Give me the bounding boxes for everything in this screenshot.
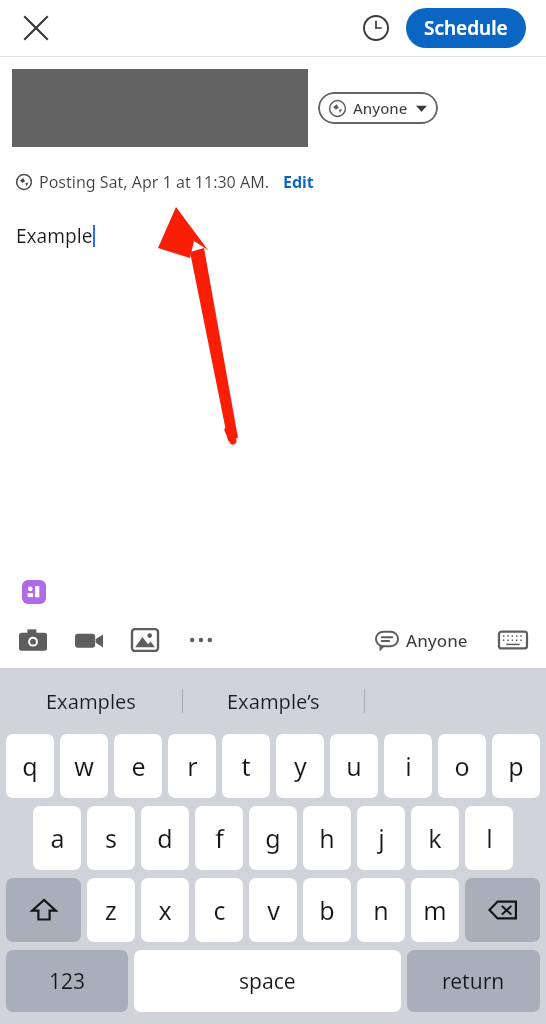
button[interactable]: n (357, 878, 405, 942)
button[interactable]: d (141, 806, 189, 870)
button[interactable]: p (492, 734, 540, 798)
staticText: d (157, 821, 173, 855)
staticText: Edit (283, 171, 314, 193)
button[interactable]: Example’s (183, 668, 364, 734)
staticText: v (267, 893, 280, 927)
staticText: Example’s (227, 688, 320, 715)
button[interactable]: Examples (0, 668, 182, 734)
staticText: o (454, 749, 470, 783)
staticText: x (158, 893, 172, 927)
staticText: r (187, 749, 198, 783)
staticText: q (22, 749, 38, 783)
button[interactable]: c (195, 878, 243, 942)
button[interactable]: Camera (14, 621, 52, 659)
button[interactable]: Shift (6, 878, 81, 942)
button[interactable]: t (222, 734, 270, 798)
button[interactable]: x (141, 878, 189, 942)
staticText: j (378, 821, 385, 855)
button[interactable]: k (411, 806, 459, 870)
button[interactable]: a (33, 806, 81, 870)
button[interactable]: Close (14, 6, 58, 50)
staticText: u (346, 749, 362, 783)
button[interactable]: Posting Sat, Apr 1 at 11:30 AM. (16, 171, 314, 193)
button[interactable]: space (134, 950, 401, 1012)
staticText: return (442, 967, 505, 996)
button[interactable]: Schedule time (356, 8, 396, 48)
button[interactable]: z (87, 878, 135, 942)
button[interactable]: j (357, 806, 405, 870)
button[interactable]: More options (182, 621, 220, 659)
staticText: z (105, 893, 117, 927)
staticText: s (105, 821, 117, 855)
staticText: space (239, 967, 296, 996)
button[interactable]: Template (22, 580, 46, 604)
staticText: h (319, 821, 335, 855)
button[interactable]: b (303, 878, 351, 942)
button[interactable]: return (407, 950, 540, 1012)
button[interactable]: f (195, 806, 243, 870)
button[interactable]: m (411, 878, 459, 942)
button[interactable]: e (114, 734, 162, 798)
button[interactable]: Schedule (406, 8, 526, 48)
button[interactable]: o (438, 734, 486, 798)
staticText: l (486, 821, 493, 855)
button[interactable]: y (276, 734, 324, 798)
button[interactable]: v (249, 878, 297, 942)
staticText: y (294, 749, 307, 783)
button[interactable]: w (60, 734, 108, 798)
staticText: Example (16, 223, 93, 249)
staticText: t (241, 749, 251, 783)
button[interactable]: h (303, 806, 351, 870)
button[interactable]: r (168, 734, 216, 798)
button[interactable]: Photo (126, 621, 164, 659)
staticText: k (428, 821, 442, 855)
button[interactable]: Video (70, 621, 108, 659)
button[interactable]: g (249, 806, 297, 870)
staticText: f (215, 821, 224, 855)
staticText: g (265, 821, 281, 855)
staticText: 123 (49, 967, 86, 996)
button[interactable]: s (87, 806, 135, 870)
staticText: Posting Sat, Apr 1 at 11:30 AM. (39, 171, 269, 193)
button[interactable]: Keyboard (494, 621, 532, 659)
button[interactable]: u (330, 734, 378, 798)
staticText: Anyone (406, 629, 468, 652)
staticText: c (213, 893, 226, 927)
button[interactable]: 123 (6, 950, 128, 1012)
button[interactable]: Backspace (465, 878, 540, 942)
button[interactable]: Anyone (372, 629, 472, 652)
staticText: e (131, 749, 146, 783)
button[interactable]: Anyone (318, 92, 438, 124)
staticText: n (373, 893, 389, 927)
staticText: i (405, 749, 412, 783)
staticText: Examples (46, 688, 136, 715)
button[interactable]: q (6, 734, 54, 798)
button[interactable]: i (384, 734, 432, 798)
staticText: w (74, 749, 94, 783)
staticText: m (423, 893, 447, 927)
staticText: Anyone (353, 98, 408, 118)
staticText: b (319, 893, 335, 927)
staticText: a (50, 821, 65, 855)
button[interactable]: l (465, 806, 513, 870)
staticText: p (508, 749, 524, 783)
staticText: Schedule (424, 15, 508, 41)
